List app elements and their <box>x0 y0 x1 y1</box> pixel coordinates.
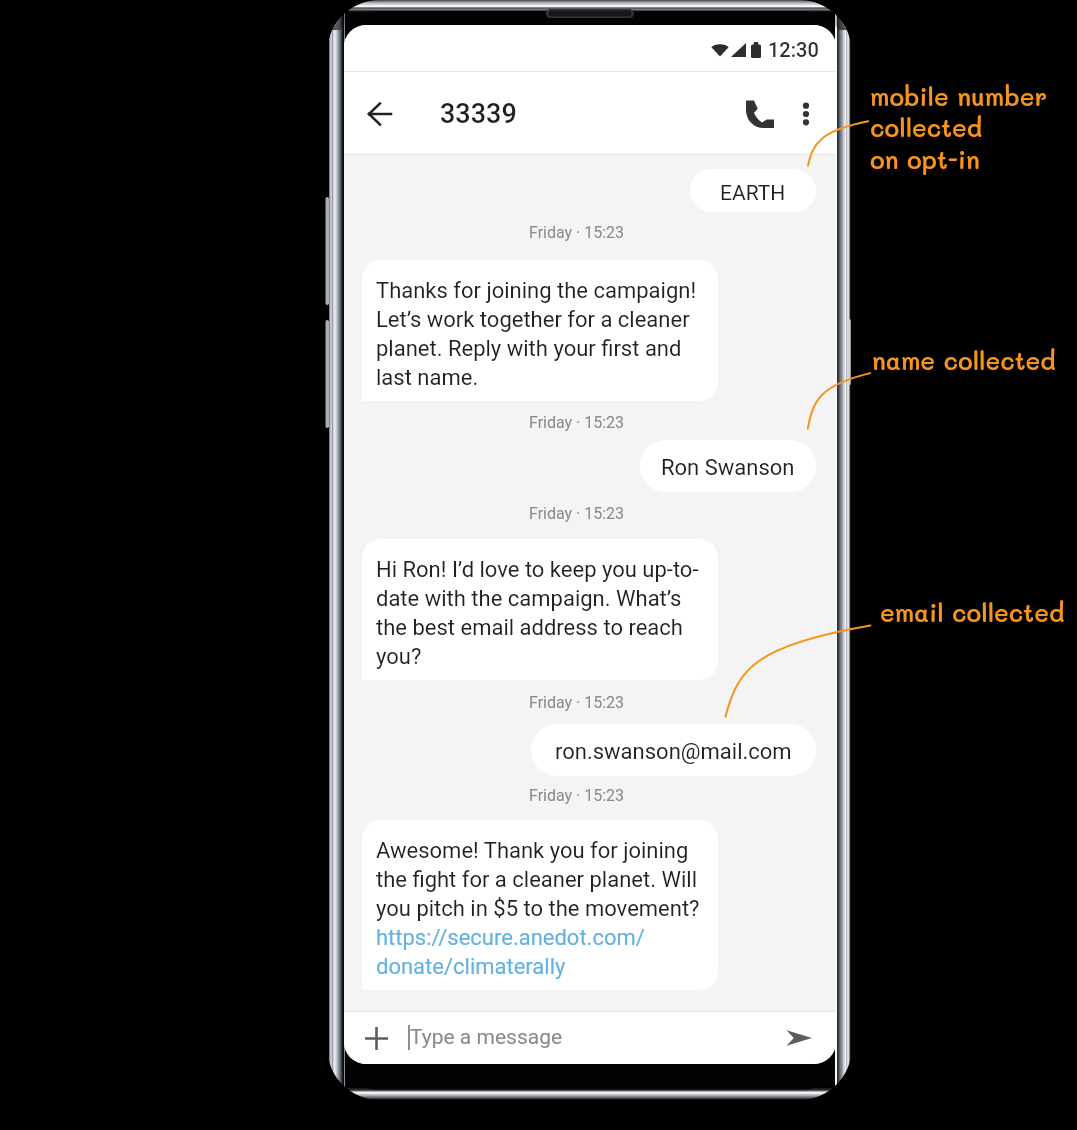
button[interactable]: Thanks for joining the campaign! Let’s w… <box>362 260 718 401</box>
button[interactable]: Attach <box>356 1018 396 1058</box>
button[interactable]: Call <box>736 90 784 138</box>
staticText: on opt-in <box>870 143 980 175</box>
button[interactable]: More options <box>784 92 828 136</box>
staticText: Ron Swanson <box>661 454 795 481</box>
button[interactable]: Back <box>356 91 402 137</box>
staticText: EARTH <box>720 179 786 206</box>
staticText: Type a message <box>410 1025 563 1050</box>
staticText: email collected <box>880 596 1065 628</box>
button[interactable]: EARTH <box>690 169 816 212</box>
button[interactable]: Send <box>779 1018 819 1058</box>
staticText: Thanks for joining the campaign! Let’s w… <box>376 275 697 391</box>
button[interactable]: ron.swanson@mail.com <box>531 724 816 776</box>
button[interactable]: Awesome! Thank you for joining the fight… <box>362 820 718 990</box>
staticText: name collected <box>872 344 1056 376</box>
staticText: Friday · 15:23 <box>529 786 625 805</box>
staticText: Friday · 15:23 <box>529 504 625 523</box>
staticText: Awesome! Thank you for joining the fight… <box>376 835 700 980</box>
staticText: mobile number <box>870 80 1047 112</box>
staticText: Hi Ron! I’d love to keep you up-to- date… <box>376 554 699 670</box>
staticText: Friday · 15:23 <box>529 223 625 242</box>
staticText: ron.swanson@mail.com <box>555 738 792 765</box>
staticText: Friday · 15:23 <box>529 413 625 432</box>
button[interactable]: Hi Ron! I’d love to keep you up-to- date… <box>362 539 718 680</box>
staticText: 33339 <box>440 98 517 130</box>
staticText: collected <box>870 111 983 143</box>
staticText: 12:30 <box>768 38 819 61</box>
staticText: Friday · 15:23 <box>529 693 625 712</box>
button[interactable]: Ron Swanson <box>640 440 816 492</box>
